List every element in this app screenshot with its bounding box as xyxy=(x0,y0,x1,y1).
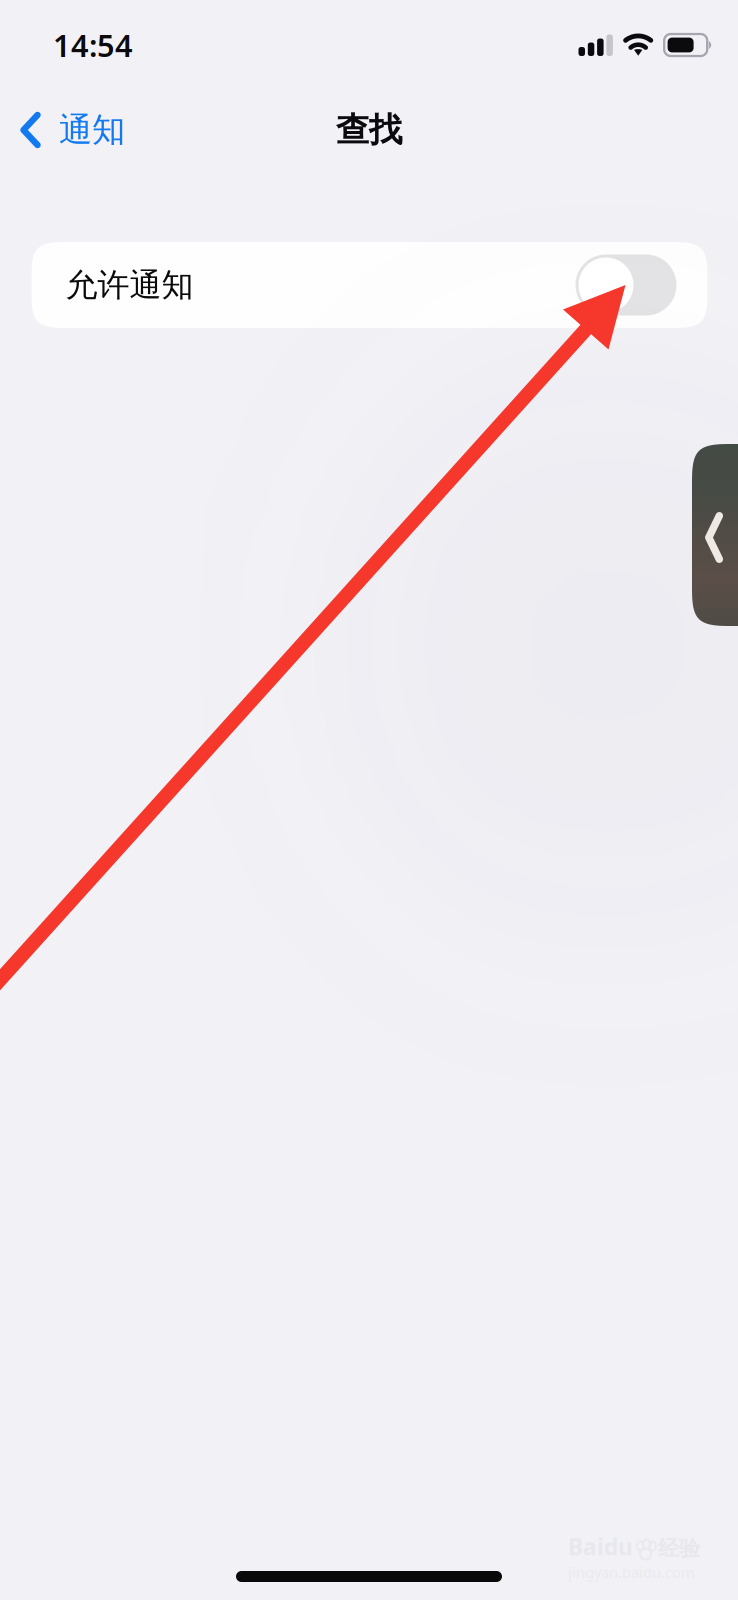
button[interactable]: Back xyxy=(692,444,738,626)
staticText: 通知 xyxy=(59,109,125,150)
staticText: Baidu xyxy=(568,1531,633,1561)
staticText: 14:54 xyxy=(53,25,133,65)
button[interactable]: 通知 xyxy=(0,94,141,166)
button[interactable]: 允许通知 xyxy=(31,242,707,328)
staticText: 经验 xyxy=(658,1535,700,1561)
staticText: 查找 xyxy=(336,109,402,150)
staticText: 允许通知 xyxy=(65,265,193,305)
